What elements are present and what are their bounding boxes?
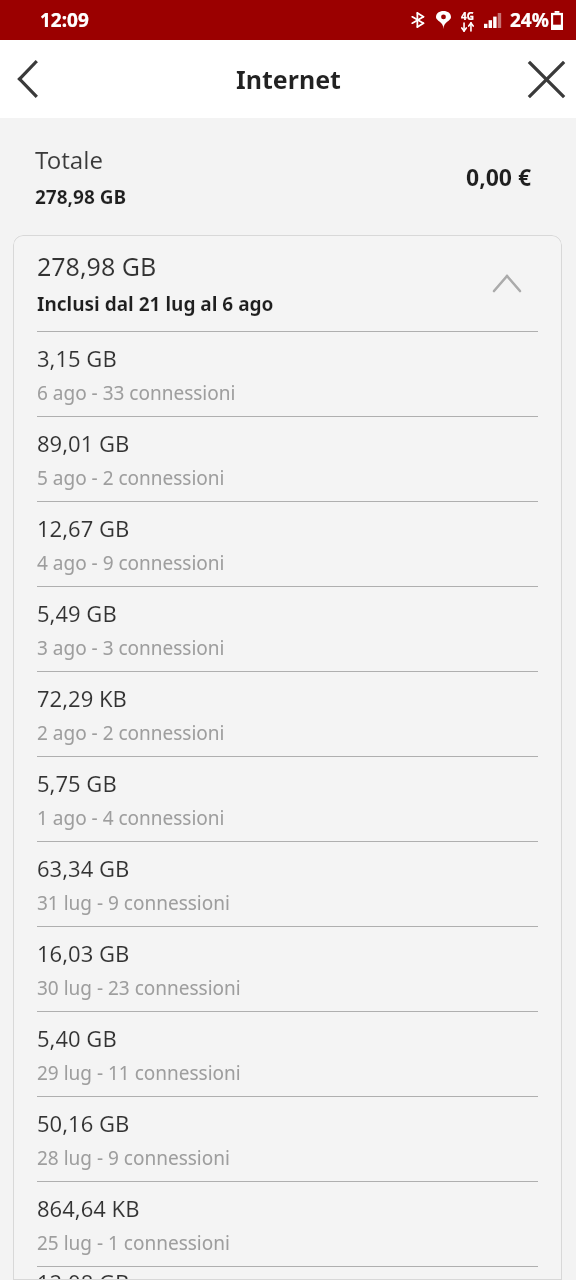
staticText: 278,98 GB [35, 184, 127, 210]
staticText: 29 lug - 11 connessioni [37, 1060, 241, 1086]
other: Collapse [486, 262, 528, 304]
staticText: 50,16 GB [37, 1108, 130, 1138]
button[interactable]: 72,29 KB [13, 672, 562, 756]
button[interactable]: 12,08 GB [13, 1267, 562, 1280]
staticText: 5 ago - 2 connessioni [37, 465, 225, 491]
button[interactable]: 5,75 GB [13, 757, 562, 841]
staticText: 72,29 KB [37, 683, 127, 713]
staticText: 864,64 KB [37, 1193, 140, 1223]
staticText: 5,75 GB [37, 768, 117, 798]
button[interactable]: 89,01 GB [13, 417, 562, 501]
staticText: 278,98 GB [37, 249, 157, 283]
button[interactable]: 50,16 GB [13, 1097, 562, 1181]
staticText: 24% [510, 7, 549, 33]
button[interactable]: 5,49 GB [13, 587, 562, 671]
button[interactable]: 12,67 GB [13, 502, 562, 586]
staticText: Internet [236, 62, 341, 96]
button[interactable]: 278,98 GB [13, 235, 562, 331]
button[interactable]: 16,03 GB [13, 927, 562, 1011]
staticText: 89,01 GB [37, 428, 130, 458]
button[interactable]: 864,64 KB [13, 1182, 562, 1266]
button[interactable]: 5,40 GB [13, 1012, 562, 1096]
button[interactable]: 63,34 GB [13, 842, 562, 926]
button[interactable]: Back [0, 51, 56, 107]
staticText: 5,49 GB [37, 598, 117, 628]
staticText: 0,00 € [466, 161, 532, 192]
staticText: 25 lug - 1 connessioni [37, 1230, 230, 1256]
staticText: 63,34 GB [37, 853, 130, 883]
staticText: 3,15 GB [37, 343, 117, 373]
staticText: 12,67 GB [37, 513, 130, 543]
button[interactable]: 3,15 GB [13, 332, 562, 416]
staticText: 12:09 [40, 7, 89, 33]
staticText: 3 ago - 3 connessioni [37, 635, 225, 661]
staticText: 31 lug - 9 connessioni [37, 890, 230, 916]
staticText: 16,03 GB [37, 938, 130, 968]
staticText: 2 ago - 2 connessioni [37, 720, 225, 746]
staticText: 4 ago - 9 connessioni [37, 550, 225, 576]
staticText: Inclusi dal 21 lug al 6 ago [37, 291, 274, 317]
staticText: 5,40 GB [37, 1023, 117, 1053]
staticText: 1 ago - 4 connessioni [37, 805, 225, 831]
staticText: 6 ago - 33 connessioni [37, 380, 236, 406]
staticText: 4G [461, 9, 474, 23]
staticText: 30 lug - 23 connessioni [37, 975, 241, 1001]
staticText: 12,08 GB [37, 1267, 130, 1280]
staticText: Totale [35, 143, 104, 176]
staticText: 28 lug - 9 connessioni [37, 1145, 230, 1171]
button[interactable]: Close [516, 49, 576, 109]
